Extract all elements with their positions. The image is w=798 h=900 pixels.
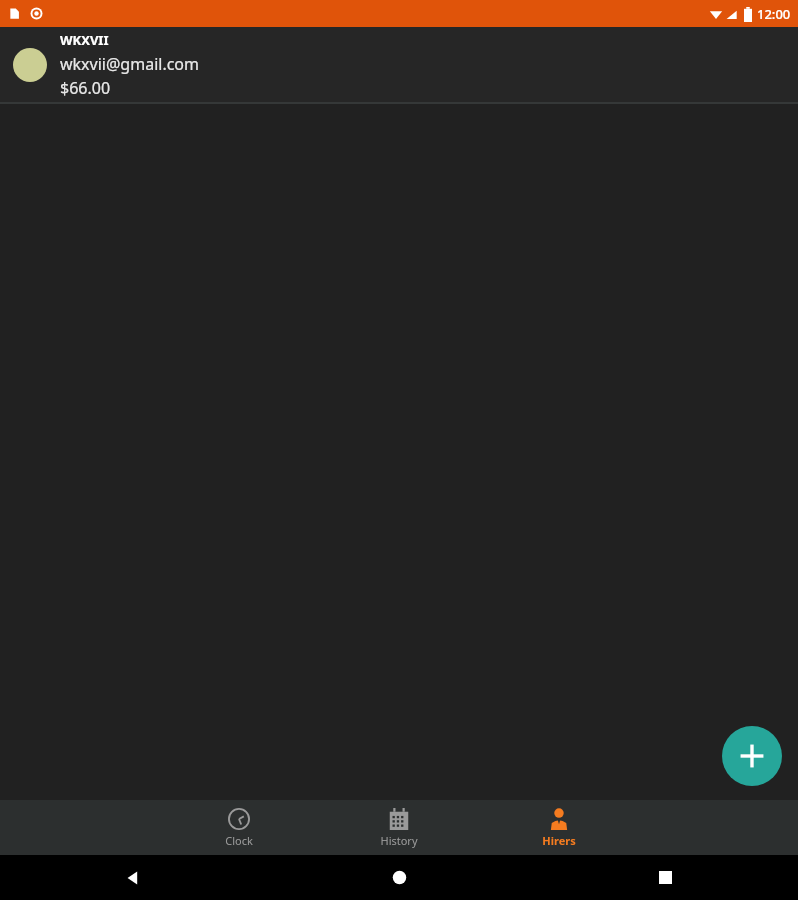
button[interactable]: Recent apps <box>532 855 798 900</box>
button[interactable]: Hirers <box>479 800 639 855</box>
staticText: $66.00 <box>60 77 111 99</box>
staticText: Clock <box>225 833 253 848</box>
button[interactable]: Back <box>0 855 266 900</box>
staticText: Hirers <box>542 833 576 848</box>
button[interactable]: WKXVII <box>0 27 798 102</box>
button[interactable]: Add hirer <box>722 726 782 786</box>
staticText: WKXVII <box>60 31 109 49</box>
button[interactable]: Clock <box>159 800 319 855</box>
button[interactable]: Home <box>266 855 532 900</box>
staticText: 12:00 <box>757 5 791 23</box>
button[interactable]: History <box>319 800 479 855</box>
staticText: wkxvii@gmail.com <box>60 53 199 75</box>
staticText: History <box>380 833 418 848</box>
